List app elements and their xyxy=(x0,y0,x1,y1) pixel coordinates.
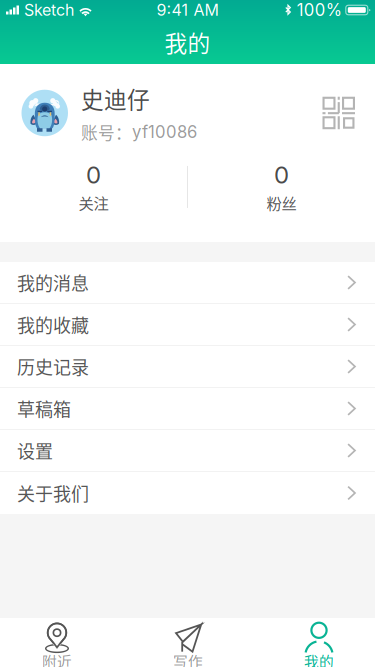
staticText: 9:41 AM xyxy=(156,0,218,20)
staticText: 关注 xyxy=(78,191,108,214)
button[interactable]: 附近 xyxy=(32,618,82,667)
button[interactable]: 写作 xyxy=(163,618,213,667)
button[interactable]: 设置 xyxy=(0,430,375,472)
staticText: 0 xyxy=(86,160,101,189)
button[interactable]: 二维码 xyxy=(322,97,355,129)
staticText: 100% xyxy=(297,0,342,20)
staticText: 我的 xyxy=(164,26,210,58)
staticText: 历史记录 xyxy=(17,353,89,380)
button[interactable]: 历史记录 xyxy=(0,346,375,388)
staticText: 我的收藏 xyxy=(17,311,89,338)
staticText: 草稿箱 xyxy=(17,395,71,422)
staticText: 写作 xyxy=(173,650,203,667)
staticText: 史迪仔 xyxy=(81,82,150,115)
staticText: yf10086 xyxy=(132,122,197,142)
staticText: 账号： xyxy=(81,120,132,144)
staticText: 我的消息 xyxy=(17,269,89,296)
staticText: 0 xyxy=(274,160,289,189)
button[interactable]: 我的 xyxy=(294,618,344,667)
button[interactable]: 草稿箱 xyxy=(0,388,375,430)
staticText: 设置 xyxy=(17,437,53,464)
staticText: Sketch xyxy=(24,0,74,20)
staticText: 关于我们 xyxy=(17,480,89,506)
button[interactable]: 我的收藏 xyxy=(0,304,375,346)
staticText: 附近 xyxy=(42,650,72,667)
button[interactable]: 关于我们 xyxy=(0,472,375,514)
button[interactable]: 我的消息 xyxy=(0,262,375,304)
staticText: 我的 xyxy=(304,650,334,667)
staticText: 粉丝 xyxy=(266,191,296,214)
